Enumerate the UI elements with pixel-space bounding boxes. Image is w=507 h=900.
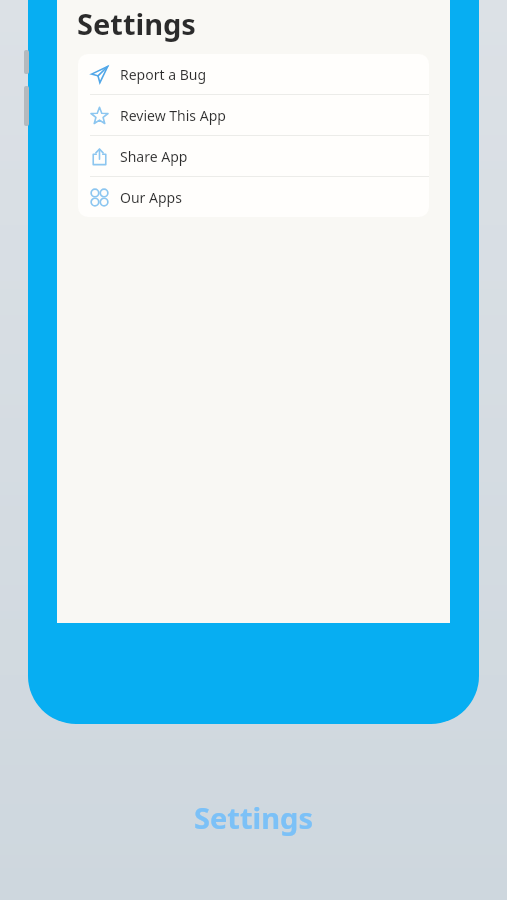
other: Share App: [90, 147, 109, 166]
staticText: Share App: [120, 147, 188, 166]
button[interactable]: Share App: [78, 136, 429, 177]
staticText: Review This App: [120, 106, 226, 125]
staticText: Report a Bug: [120, 65, 207, 84]
button[interactable]: Review This App: [78, 95, 429, 136]
other: Review This App: [90, 106, 109, 125]
staticText: Our Apps: [120, 188, 182, 207]
button[interactable]: Our Apps: [78, 177, 429, 217]
other: Report a Bug: [90, 65, 109, 84]
other: Our Apps: [90, 188, 109, 207]
staticText: Settings: [77, 4, 196, 43]
staticText: Settings: [0, 798, 507, 837]
button[interactable]: Report a Bug: [78, 54, 429, 95]
